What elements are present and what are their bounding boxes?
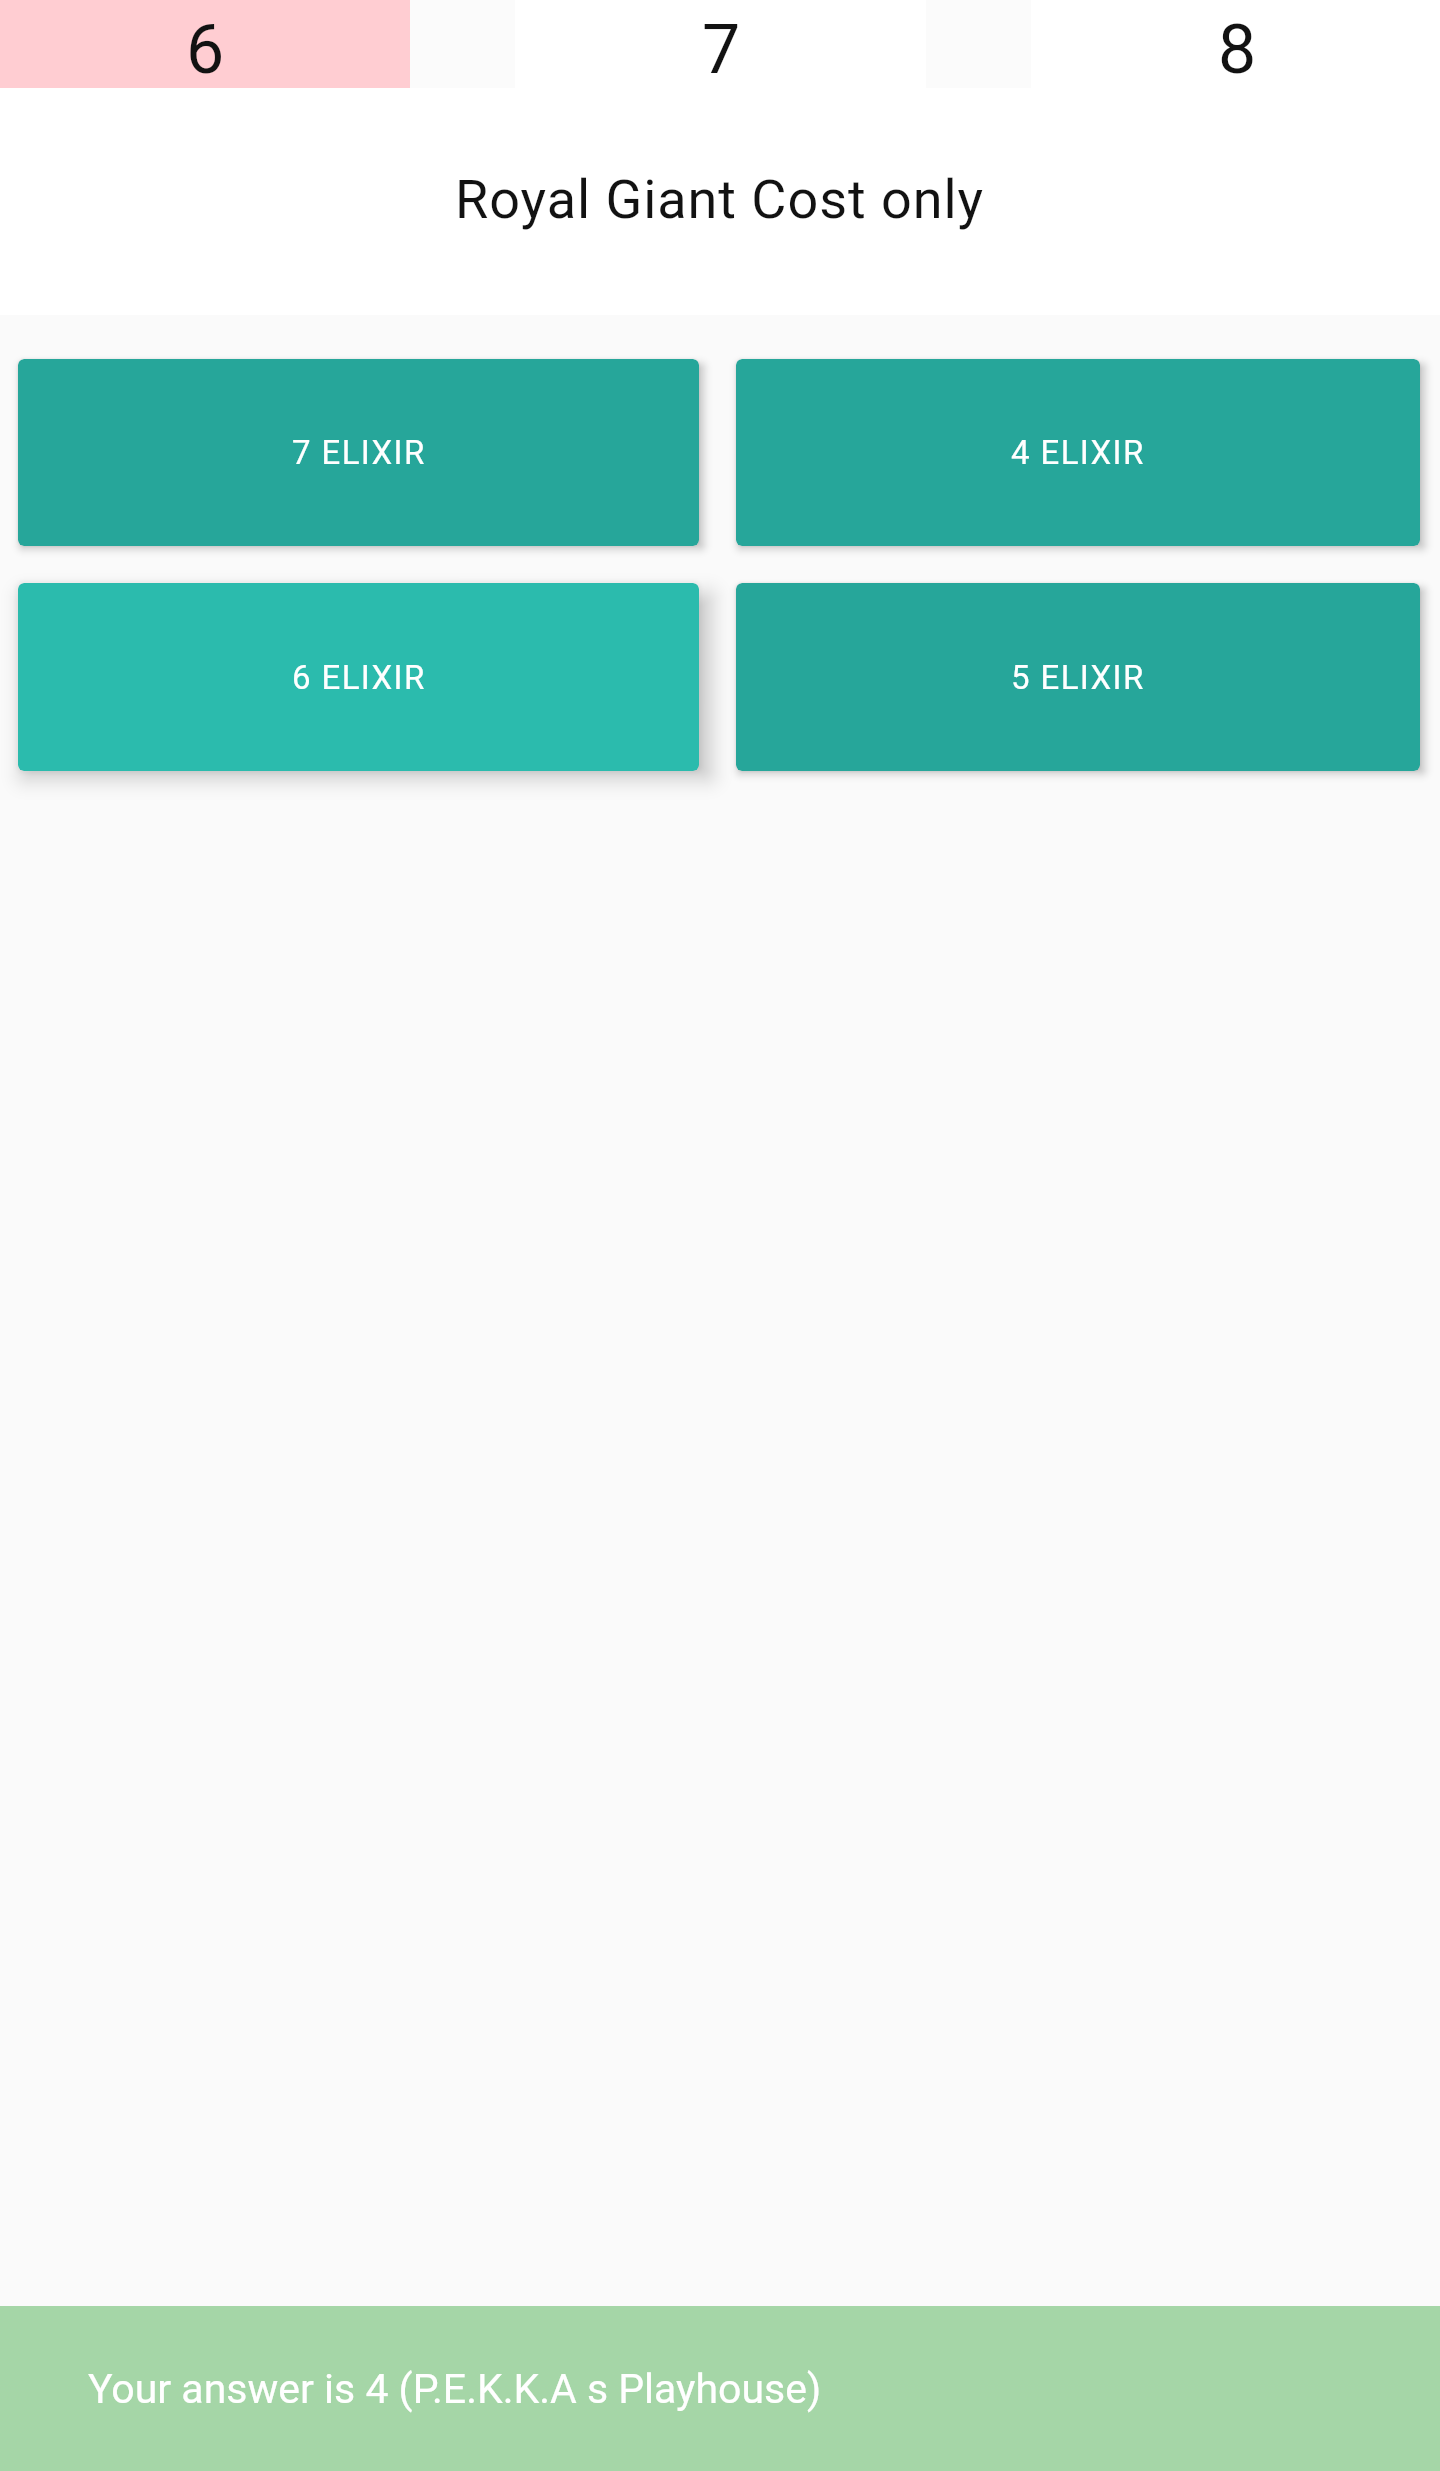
staticText: 5 ELIXIR (1011, 658, 1145, 697)
staticText: Royal Giant Cost only (455, 168, 985, 231)
button[interactable]: Your answer is 4 (P.E.K.K.A s Playhouse) (0, 2306, 1440, 2471)
staticText: 6 (186, 10, 225, 88)
button[interactable]: 6 ELIXIR (18, 583, 699, 771)
button[interactable]: 6 (0, 0, 410, 88)
staticText: Your answer is 4 (P.E.K.K.A s Playhouse) (88, 2365, 822, 2413)
button[interactable]: 5 ELIXIR (736, 583, 1420, 771)
staticText: 8 (1218, 10, 1257, 88)
staticText: 6 ELIXIR (292, 658, 426, 697)
staticText: 7 (702, 10, 741, 88)
staticText: 4 ELIXIR (1011, 433, 1145, 472)
button[interactable]: 4 ELIXIR (736, 359, 1420, 546)
staticText: 7 ELIXIR (292, 433, 426, 472)
button[interactable]: 8 (1031, 0, 1440, 88)
button[interactable]: 7 ELIXIR (18, 359, 699, 546)
button[interactable]: 7 (515, 0, 926, 88)
